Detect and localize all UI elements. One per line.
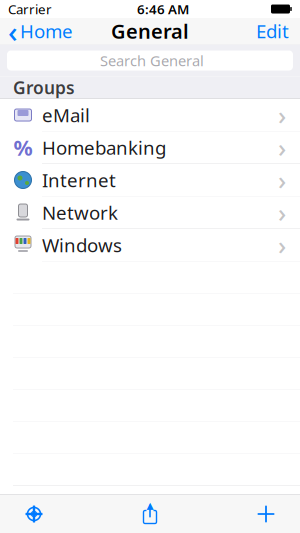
staticText: ▲ — [146, 500, 153, 511]
button[interactable]: 􀊫 — [7, 50, 293, 70]
staticText: › — [278, 163, 286, 197]
staticText: Homebanking — [42, 135, 166, 160]
staticText: › — [278, 131, 286, 164]
button[interactable]: Settings — [4, 496, 64, 532]
staticText: Home — [20, 19, 73, 43]
staticText: eMail — [42, 103, 90, 127]
button[interactable]: Edit — [256, 15, 300, 47]
button[interactable]: Windows — [0, 229, 300, 261]
button[interactable]: Add — [236, 496, 296, 532]
button[interactable]: Internet — [0, 164, 300, 196]
staticText: Edit — [256, 19, 289, 43]
button[interactable]: Share — [120, 496, 180, 532]
staticText: ‹ — [8, 11, 18, 50]
staticText: Carrier — [8, 0, 52, 18]
staticText: % — [13, 133, 32, 162]
staticText: 6:46 AM — [137, 0, 189, 18]
staticText: Search General — [100, 51, 204, 70]
staticText: Internet — [42, 168, 116, 192]
staticText: Windows — [42, 233, 122, 257]
button[interactable]: % — [0, 131, 300, 164]
staticText: › — [278, 196, 286, 229]
button[interactable]: eMail — [0, 99, 300, 131]
staticText: Groups — [13, 76, 75, 99]
staticText: Network — [42, 200, 118, 225]
button[interactable]: Network — [0, 196, 300, 229]
staticText: › — [278, 228, 286, 262]
staticText: › — [278, 98, 286, 132]
button[interactable]: ‹ — [0, 7, 73, 54]
staticText: General — [111, 18, 189, 44]
